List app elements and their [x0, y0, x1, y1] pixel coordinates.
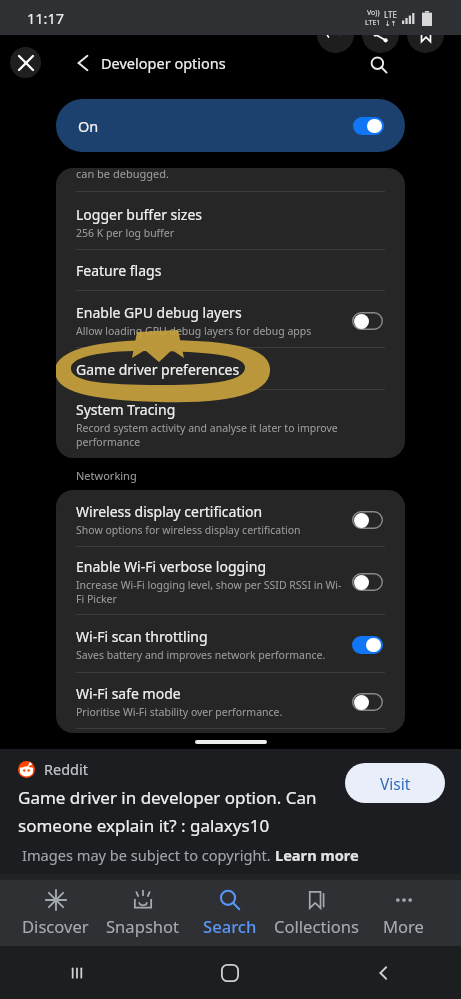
- staticText: Game driver preferences: [76, 360, 240, 379]
- button[interactable]: Wi-Fi scan throttling: [56, 615, 405, 672]
- button[interactable]: [352, 693, 383, 711]
- button[interactable]: Translate: [317, 16, 354, 53]
- staticText: Prioritise Wi-Fi stability over performa…: [76, 705, 283, 719]
- staticText: Allow loading GPU debug layers for debug…: [76, 324, 312, 338]
- button[interactable]: Close: [10, 47, 41, 78]
- staticText: 11:17: [27, 8, 65, 28]
- staticText: LTE1: [365, 18, 381, 28]
- staticText: Vo)): [367, 8, 380, 18]
- staticText: Saves battery and improves network perfo…: [76, 648, 326, 662]
- staticText: Wireless display certification: [76, 502, 263, 521]
- button[interactable]: System Tracing: [56, 390, 405, 458]
- staticText: Snapshot: [106, 915, 180, 938]
- button[interactable]: Wireless display certification: [56, 490, 405, 546]
- staticText: Collections: [274, 915, 359, 938]
- staticText: Developer options: [101, 53, 226, 73]
- button[interactable]: Game driver preferences: [56, 348, 405, 389]
- staticText: Visit: [380, 773, 411, 794]
- button[interactable]: [353, 117, 384, 135]
- button[interactable]: Search: [368, 54, 390, 76]
- staticText: More: [383, 915, 424, 938]
- staticText: Discover: [22, 915, 89, 938]
- button[interactable]: Feature flags: [56, 250, 405, 290]
- staticText: can be debugged.: [76, 168, 169, 181]
- button[interactable]: [352, 636, 383, 654]
- button[interactable]: Share: [362, 16, 399, 53]
- staticText: System Tracing: [76, 400, 176, 419]
- button[interactable]: On: [56, 99, 405, 152]
- staticText: Game driver in developer option. Can som…: [18, 786, 337, 837]
- button[interactable]: Save: [407, 16, 444, 53]
- staticText: Enable GPU debug layers: [76, 303, 242, 322]
- button[interactable]: Visit: [345, 763, 445, 803]
- button[interactable]: Back: [307, 946, 461, 999]
- staticText: Images may be subject to copyright.: [22, 845, 275, 865]
- staticText: Search: [203, 915, 257, 938]
- button[interactable]: [352, 312, 383, 330]
- button[interactable]: Enable GPU debug layers: [56, 291, 405, 347]
- button[interactable]: Logger buffer sizes: [56, 192, 405, 249]
- button[interactable]: Recents: [0, 946, 153, 999]
- button[interactable]: [352, 573, 383, 591]
- staticText: Record system activity and analyse it la…: [76, 421, 383, 449]
- button[interactable]: More: [360, 880, 447, 946]
- button[interactable]: [352, 511, 383, 529]
- button[interactable]: Wi-Fi safe mode: [56, 673, 405, 728]
- button[interactable]: Home: [153, 946, 307, 999]
- staticText: 256 K per log buffer: [76, 226, 175, 240]
- staticText: LTE: [384, 9, 397, 20]
- staticText: Wi-Fi safe mode: [76, 684, 181, 703]
- button[interactable]: Enable Wi-Fi verbose logging: [56, 547, 405, 614]
- button[interactable]: Search: [186, 880, 273, 946]
- staticText: Show options for wireless display certif…: [76, 523, 301, 537]
- button[interactable]: Learn more: [275, 845, 359, 865]
- staticText: Wi-Fi scan throttling: [76, 627, 208, 646]
- staticText: ↓↑: [385, 20, 397, 28]
- button[interactable]: Snapshot: [99, 880, 186, 946]
- staticText: Feature flags: [76, 261, 162, 280]
- staticText: Increase Wi-Fi logging level, show per S…: [76, 578, 342, 606]
- button[interactable]: Discover: [12, 880, 99, 946]
- staticText: Enable Wi-Fi verbose logging: [76, 557, 266, 576]
- staticText: Logger buffer sizes: [76, 205, 203, 224]
- button[interactable]: Collections: [273, 880, 360, 946]
- staticText: On: [78, 116, 99, 136]
- staticText: Networking: [76, 468, 137, 483]
- staticText: Reddit: [44, 759, 89, 779]
